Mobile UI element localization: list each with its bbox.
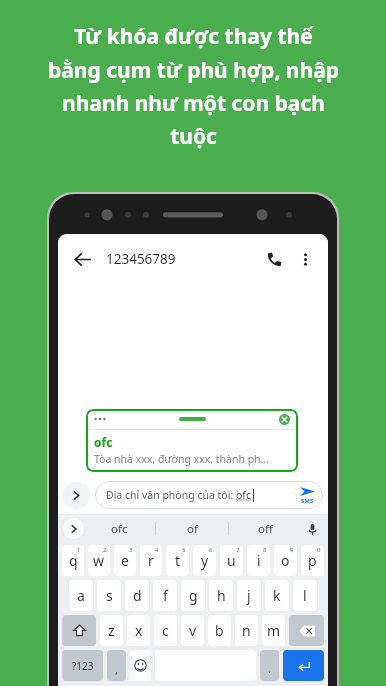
staticText: . bbox=[268, 661, 271, 676]
button[interactable]: ?123 bbox=[62, 650, 103, 681]
staticText: a bbox=[77, 586, 85, 605]
button[interactable]: q bbox=[62, 545, 84, 576]
staticText: m bbox=[267, 621, 281, 640]
button[interactable]: j bbox=[237, 580, 261, 611]
staticText: p bbox=[308, 551, 317, 570]
button[interactable]: i bbox=[247, 545, 270, 576]
staticText: SMS bbox=[301, 497, 314, 505]
button[interactable]: y bbox=[193, 545, 216, 576]
staticText: 6 bbox=[209, 546, 213, 554]
button[interactable]: Expand bbox=[63, 482, 90, 509]
staticText: Tòa nhà xxx, đường xxx, thành ph… bbox=[94, 452, 269, 466]
button[interactable]: More suggestions bbox=[63, 518, 84, 539]
button[interactable]: Enter bbox=[283, 650, 324, 681]
staticText: 1 bbox=[77, 546, 81, 554]
button[interactable]: Emoji bbox=[130, 650, 151, 681]
button[interactable]: v bbox=[181, 615, 204, 646]
button[interactable]: w bbox=[88, 545, 110, 576]
button[interactable]: Call bbox=[260, 245, 288, 273]
button[interactable]: k bbox=[265, 580, 289, 611]
staticText: 5 bbox=[182, 546, 186, 554]
staticText: j bbox=[247, 586, 251, 605]
button[interactable]: Period bbox=[260, 650, 279, 681]
staticText: 4 bbox=[155, 546, 159, 554]
staticText: ?123 bbox=[72, 659, 94, 673]
staticText: 7 bbox=[236, 546, 240, 554]
button[interactable]: d bbox=[125, 580, 149, 611]
button[interactable]: Địa chỉ văn phòng của tôi: bbox=[95, 481, 323, 509]
button[interactable]: Comma bbox=[107, 650, 126, 681]
staticText: z bbox=[108, 621, 115, 640]
staticText: x bbox=[135, 621, 143, 640]
staticText: k bbox=[273, 586, 281, 605]
button[interactable]: Voice input bbox=[301, 518, 323, 540]
staticText: o bbox=[281, 551, 290, 570]
button[interactable]: a bbox=[69, 580, 93, 611]
staticText: b bbox=[215, 621, 224, 640]
button[interactable]: More options bbox=[292, 246, 318, 272]
staticText: 123456789 bbox=[106, 250, 176, 268]
staticText: v bbox=[189, 621, 197, 640]
button[interactable]: r bbox=[140, 545, 162, 576]
button[interactable]: of bbox=[156, 514, 228, 543]
button[interactable]: off bbox=[229, 514, 301, 543]
staticText: Địa chỉ văn phòng của tôi: bbox=[106, 488, 236, 502]
staticText: i bbox=[257, 551, 261, 570]
staticText: l bbox=[303, 586, 307, 605]
staticText: ofc bbox=[111, 521, 128, 537]
button[interactable]: p bbox=[301, 545, 324, 576]
staticText: ofc bbox=[236, 488, 252, 502]
button[interactable]: f bbox=[153, 580, 177, 611]
button[interactable]: l bbox=[293, 580, 317, 611]
staticText: Từ khóa được thay thế bằng cụm từ phù hợ… bbox=[48, 22, 339, 150]
button[interactable]: t bbox=[166, 545, 189, 576]
button[interactable]: b bbox=[208, 615, 231, 646]
staticText: 3 bbox=[129, 546, 133, 554]
staticText: 2 bbox=[103, 546, 107, 554]
button[interactable]: o bbox=[274, 545, 297, 576]
button[interactable]: Backspace bbox=[289, 615, 324, 646]
button[interactable]: Back bbox=[68, 245, 96, 273]
staticText: d bbox=[133, 586, 142, 605]
staticText: s bbox=[106, 586, 113, 605]
staticText: c bbox=[162, 621, 169, 640]
staticText: u bbox=[227, 551, 236, 570]
staticText: 9 bbox=[290, 546, 294, 554]
button[interactable]: n bbox=[235, 615, 258, 646]
button[interactable]: u bbox=[220, 545, 243, 576]
button[interactable]: x bbox=[127, 615, 150, 646]
button[interactable]: e bbox=[114, 545, 136, 576]
staticText: f bbox=[163, 586, 168, 605]
button[interactable]: m bbox=[262, 615, 285, 646]
staticText: off bbox=[258, 521, 273, 537]
button[interactable]: z bbox=[100, 615, 123, 646]
staticText: , bbox=[115, 662, 118, 677]
staticText: ofc bbox=[94, 434, 113, 450]
button[interactable]: Close suggestion bbox=[86, 409, 298, 472]
staticText: 0 bbox=[317, 546, 321, 554]
button[interactable]: Shift bbox=[62, 615, 96, 646]
staticText: e bbox=[121, 551, 129, 570]
staticText: 8 bbox=[263, 546, 267, 554]
staticText: of bbox=[187, 521, 198, 537]
staticText: n bbox=[242, 621, 251, 640]
staticText: t bbox=[175, 551, 181, 570]
button[interactable]: Close suggestion bbox=[279, 414, 290, 425]
staticText: w bbox=[93, 551, 105, 570]
staticText: r bbox=[148, 551, 154, 570]
staticText: g bbox=[189, 586, 198, 605]
button[interactable]: s bbox=[97, 580, 121, 611]
button[interactable]: Send SMS bbox=[298, 486, 317, 505]
button[interactable]: g bbox=[181, 580, 205, 611]
button[interactable]: h bbox=[209, 580, 233, 611]
staticText: h bbox=[217, 586, 226, 605]
button[interactable]: c bbox=[154, 615, 177, 646]
staticText: q bbox=[69, 551, 78, 570]
staticText: y bbox=[201, 551, 209, 570]
button[interactable]: ofc bbox=[84, 514, 155, 543]
